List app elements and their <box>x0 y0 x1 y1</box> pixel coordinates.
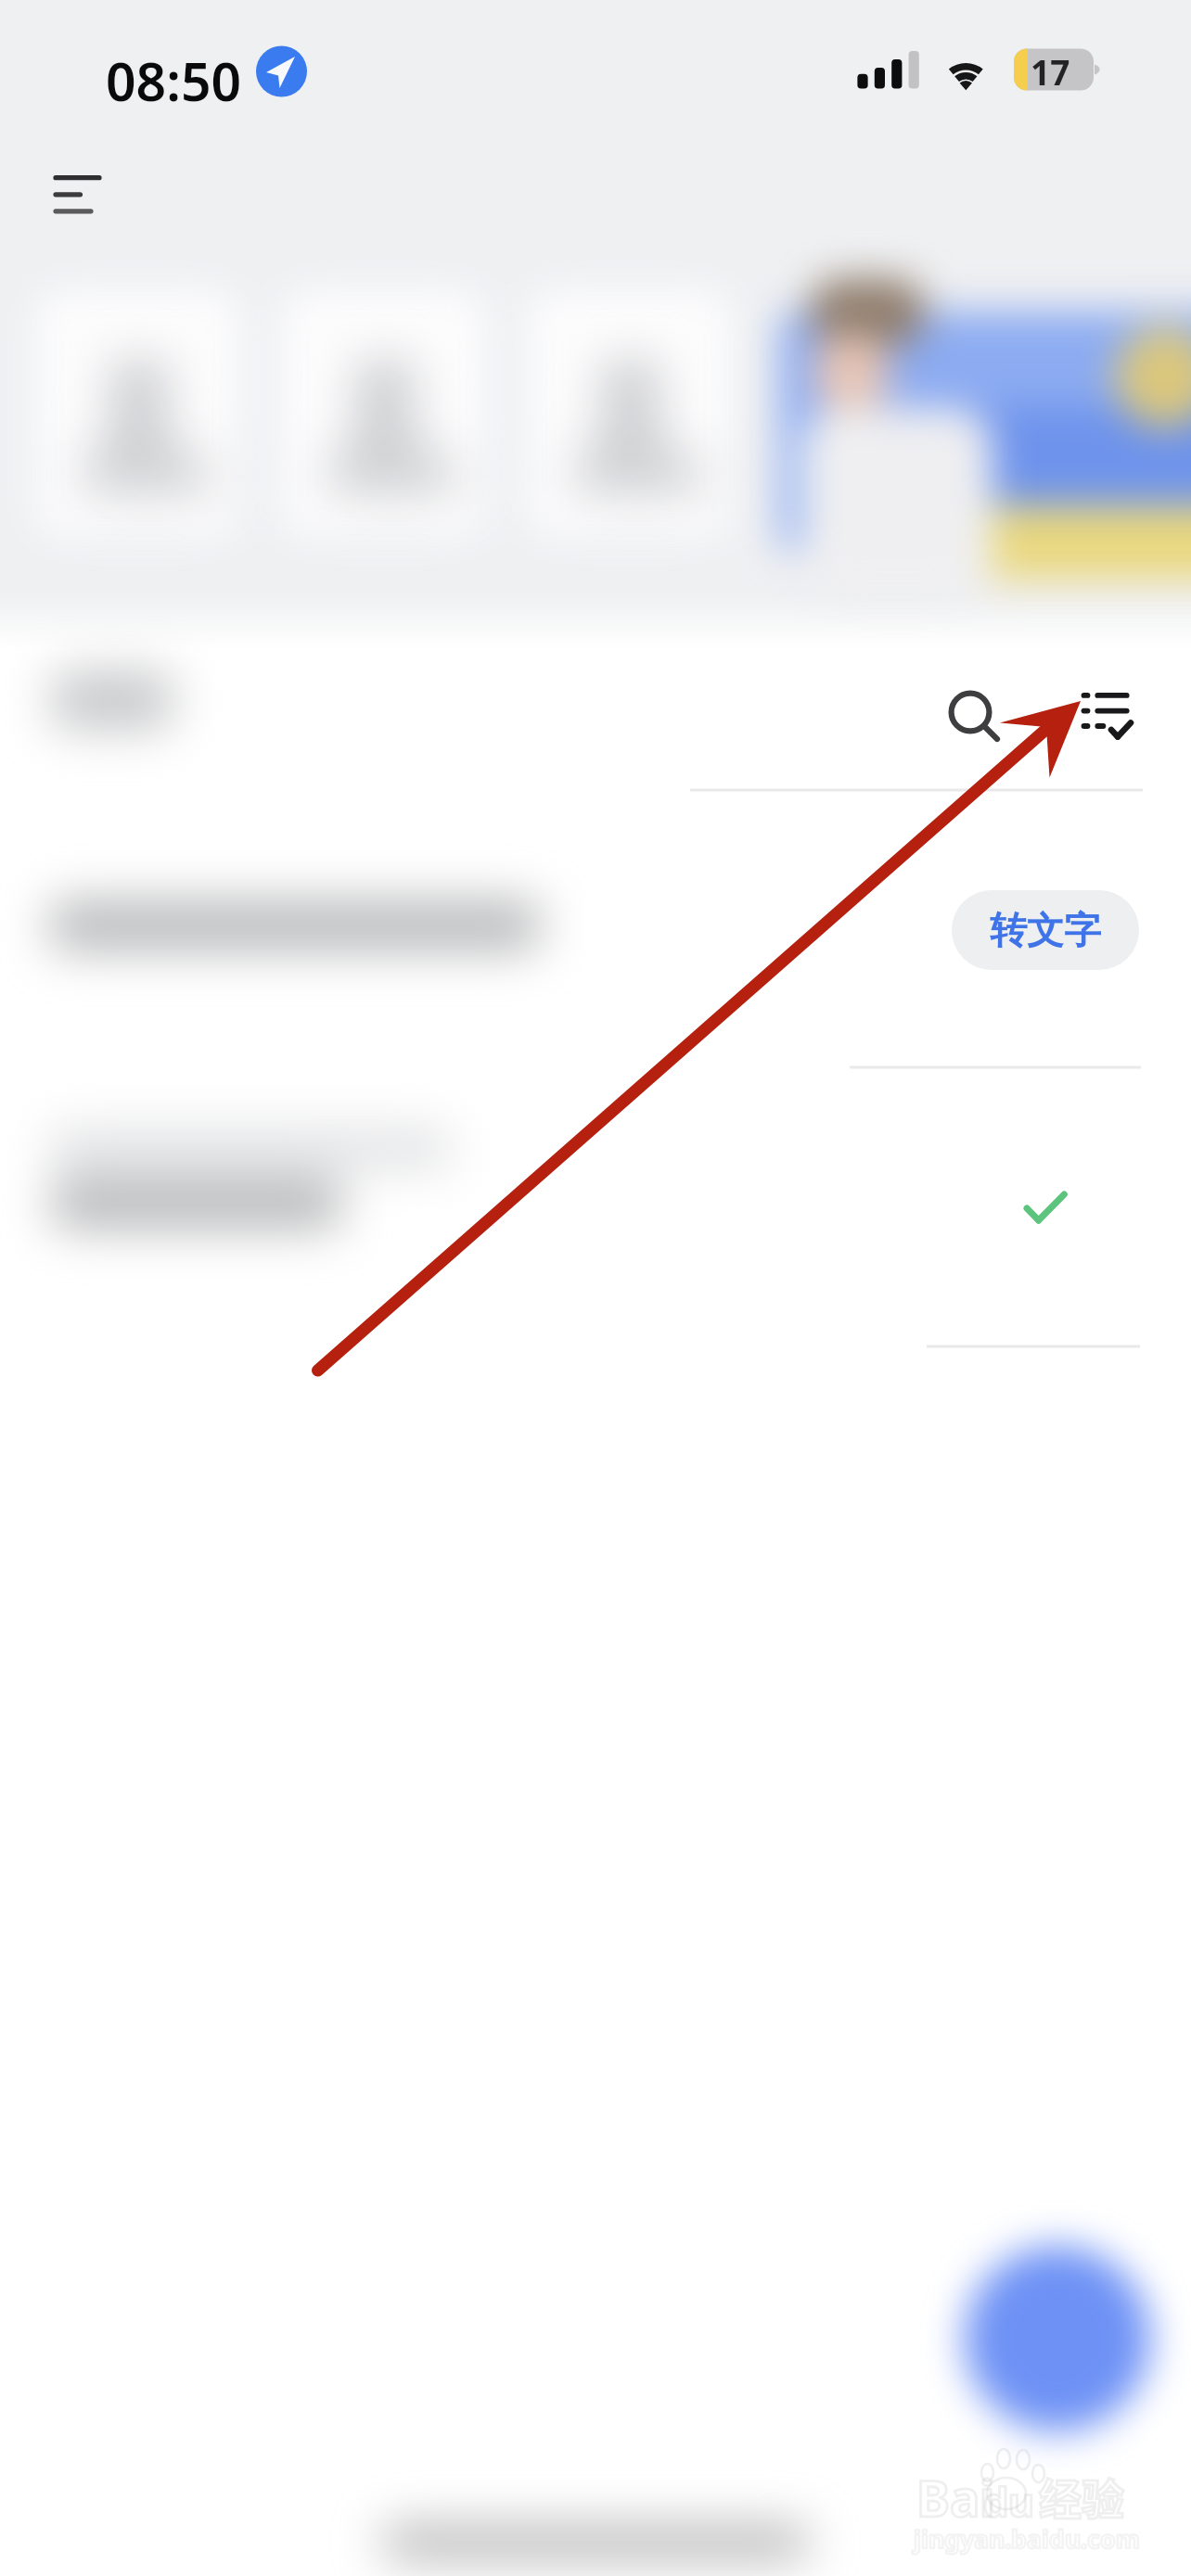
button[interactable]: Search <box>920 662 1022 764</box>
staticText: 转文字 <box>990 907 1101 953</box>
button[interactable]: New note <box>955 2237 1159 2441</box>
staticText: 17 <box>1031 48 1070 95</box>
button[interactable]: Mark as done <box>996 1163 1104 1265</box>
button[interactable]: Shared folder 1 <box>35 289 240 537</box>
button[interactable]: Select notes <box>1056 662 1158 764</box>
staticText: 08:50 <box>106 45 242 117</box>
button[interactable]: Menu <box>22 145 134 247</box>
button[interactable]: Note 2 <box>0 1068 1191 1346</box>
button[interactable]: Note 1 <box>0 801 1191 1066</box>
button[interactable]: Shared folder 2 <box>281 289 486 537</box>
button[interactable]: Photo note <box>773 289 978 537</box>
button[interactable]: 转文字 <box>952 890 1139 970</box>
button[interactable]: Shared folder 3 <box>527 289 732 537</box>
